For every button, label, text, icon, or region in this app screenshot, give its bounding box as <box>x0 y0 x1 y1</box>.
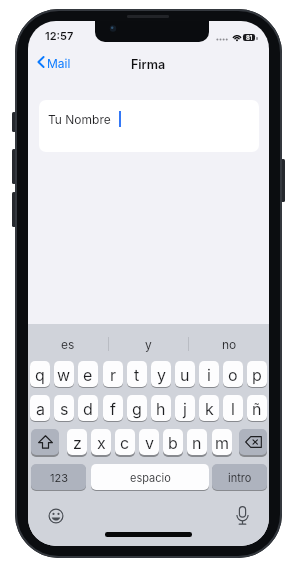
staticText: m <box>215 433 230 452</box>
staticText: w <box>57 365 71 384</box>
staticText: Mail <box>47 56 71 71</box>
button[interactable] <box>239 429 267 455</box>
button[interactable]: i <box>199 361 219 387</box>
button[interactable]: v <box>139 429 159 455</box>
staticText: g <box>132 399 142 418</box>
staticText: k <box>205 399 214 418</box>
button[interactable]: u <box>175 361 195 387</box>
staticText: u <box>180 365 190 384</box>
staticText: l <box>231 399 235 418</box>
button[interactable]: d <box>78 395 98 421</box>
staticText: e <box>83 365 93 384</box>
staticText: c <box>120 433 130 452</box>
staticText: d <box>83 399 93 418</box>
staticText: z <box>73 433 82 452</box>
button[interactable]: y <box>108 333 188 355</box>
staticText: q <box>35 365 45 384</box>
button[interactable] <box>36 55 98 72</box>
staticText: 12:57 <box>45 29 74 42</box>
staticText: y <box>157 365 166 384</box>
staticText: es <box>61 337 75 352</box>
button[interactable]: h <box>151 395 171 421</box>
staticText: o <box>228 365 238 384</box>
staticText: 123 <box>50 471 68 484</box>
button[interactable] <box>228 502 256 530</box>
staticText: n <box>192 433 202 452</box>
button[interactable]: c <box>115 429 135 455</box>
staticText: b <box>168 433 178 452</box>
button[interactable]: n <box>187 429 207 455</box>
button[interactable]: j <box>175 395 195 421</box>
staticText: t <box>134 365 140 384</box>
staticText: intro <box>228 471 252 484</box>
staticText: v <box>145 433 154 452</box>
button[interactable]: intro <box>212 464 267 490</box>
staticText: Firma <box>131 57 166 72</box>
button[interactable]: w <box>54 361 74 387</box>
button[interactable]: no <box>189 333 269 355</box>
button[interactable]: t <box>127 361 147 387</box>
button[interactable]: g <box>127 395 147 421</box>
button[interactable]: es <box>28 333 108 355</box>
staticText: a <box>36 399 45 418</box>
button[interactable] <box>39 100 259 152</box>
button[interactable]: r <box>103 361 123 387</box>
button[interactable]: e <box>78 361 98 387</box>
button[interactable]: s <box>54 395 74 421</box>
button[interactable]: q <box>30 361 50 387</box>
staticText: no <box>222 337 237 352</box>
staticText: ñ <box>252 399 262 418</box>
button[interactable]: m <box>212 429 232 455</box>
button[interactable]: y <box>151 361 171 387</box>
button[interactable]: p <box>247 361 267 387</box>
staticText: j <box>183 399 187 418</box>
staticText: x <box>97 433 106 452</box>
staticText: i <box>207 365 211 384</box>
button[interactable]: f <box>103 395 123 421</box>
button[interactable]: l <box>223 395 243 421</box>
button[interactable]: o <box>223 361 243 387</box>
button[interactable]: 123 <box>31 464 86 490</box>
staticText: Tu Nombre <box>48 112 111 126</box>
staticText: r <box>110 365 117 384</box>
staticText: 81 <box>246 34 253 41</box>
staticText: f <box>110 399 116 418</box>
button[interactable]: a <box>30 395 50 421</box>
button[interactable] <box>42 502 70 530</box>
button[interactable]: espacio <box>91 464 209 490</box>
button[interactable]: x <box>91 429 111 455</box>
button[interactable] <box>31 429 59 455</box>
button[interactable]: k <box>199 395 219 421</box>
staticText: s <box>60 399 69 418</box>
staticText: espacio <box>130 471 171 484</box>
button[interactable]: z <box>67 429 87 455</box>
staticText: h <box>156 399 166 418</box>
staticText: y <box>145 337 152 352</box>
button[interactable]: ñ <box>247 395 267 421</box>
button[interactable]: b <box>163 429 183 455</box>
staticText: p <box>252 365 262 384</box>
